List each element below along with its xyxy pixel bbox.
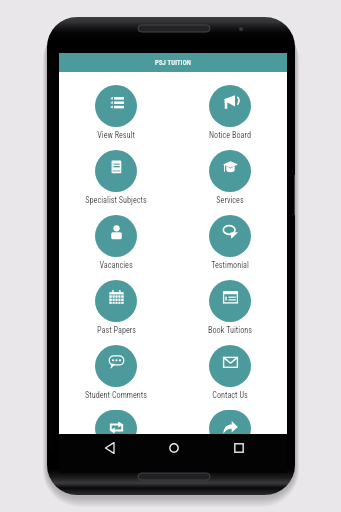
staticText: Services: [216, 195, 244, 205]
button[interactable]: PSJ TUITION: [59, 53, 287, 72]
staticText: Specialist Subjects: [85, 195, 147, 205]
button[interactable]: Notice Board: [173, 72, 287, 137]
button[interactable]: View Result: [59, 72, 173, 137]
staticText: Testimonial: [211, 260, 249, 270]
staticText: View Result: [97, 130, 135, 140]
staticText: Book Tuitions: [208, 325, 252, 335]
button[interactable]: Contact Us: [173, 332, 287, 397]
button[interactable]: Past Papers: [59, 267, 173, 332]
button[interactable]: Student Comments: [59, 332, 173, 397]
button[interactable]: Specialist Subjects: [59, 137, 173, 202]
button[interactable]: Recents: [229, 438, 249, 458]
staticText: Student Comments: [85, 390, 147, 400]
staticText: Past Papers: [97, 325, 136, 335]
button[interactable]: Share: [173, 397, 287, 434]
button[interactable]: Vacancies: [59, 202, 173, 267]
staticText: Contact Us: [212, 390, 248, 400]
button[interactable]: Refer a Friend: [59, 397, 173, 434]
button[interactable]: Testimonial: [173, 202, 287, 267]
button[interactable]: Back: [100, 438, 120, 458]
button[interactable]: Home: [164, 438, 184, 458]
button[interactable]: Services: [173, 137, 287, 202]
staticText: Vacancies: [99, 260, 133, 270]
button[interactable]: Book Tuitions: [173, 267, 287, 332]
staticText: PSJ TUITION: [155, 59, 192, 67]
staticText: Notice Board: [209, 130, 251, 140]
